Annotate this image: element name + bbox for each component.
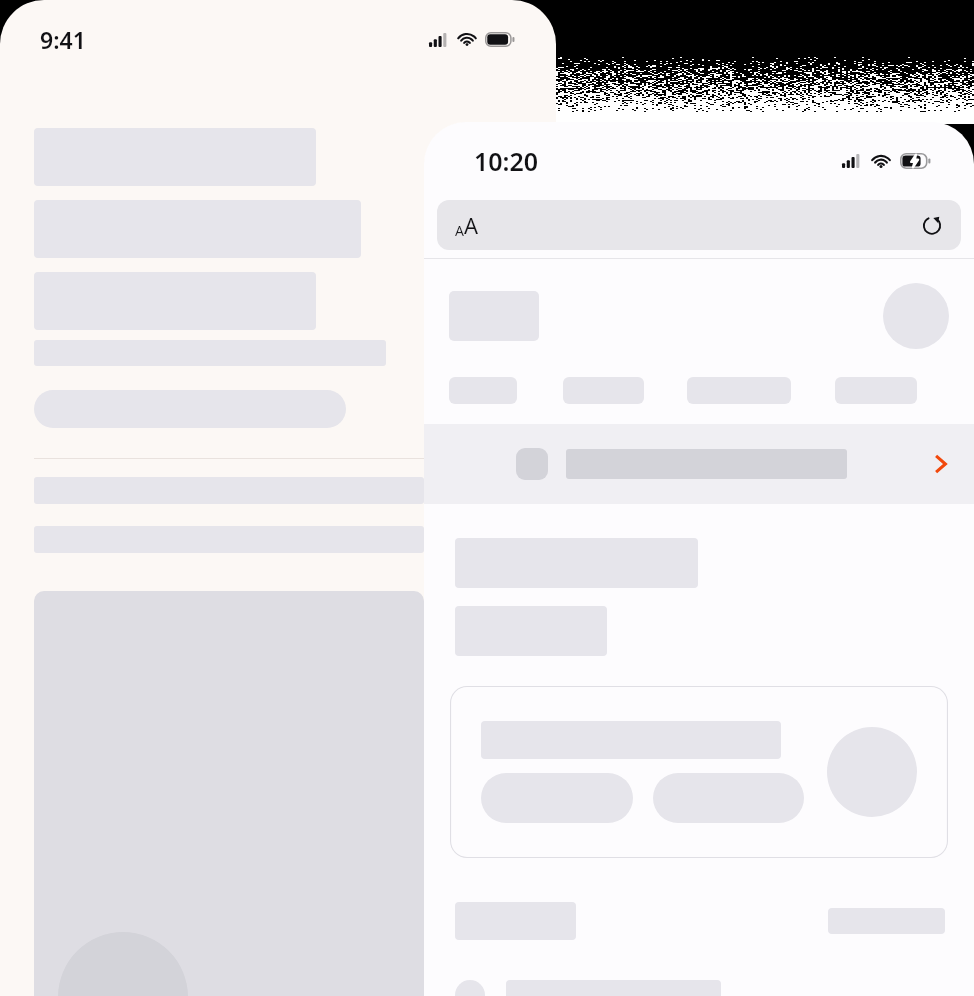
button[interactable]: [450, 686, 948, 858]
staticText: 10:20: [474, 144, 539, 178]
other: Open: [930, 453, 952, 475]
button[interactable]: Open: [424, 424, 974, 504]
button[interactable]: Reload: [921, 214, 943, 236]
button[interactable]: A: [437, 200, 961, 250]
staticText: 9:41: [40, 24, 86, 55]
staticText: A: [455, 221, 464, 240]
staticText: A: [464, 210, 479, 240]
